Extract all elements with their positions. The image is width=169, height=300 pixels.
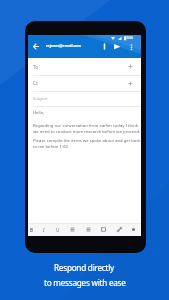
staticText: rejones@email.com [46, 43, 82, 48]
button[interactable] [112, 42, 122, 52]
button[interactable]: To [28, 58, 141, 75]
staticText: U [56, 227, 60, 233]
button[interactable]: rejones@email.com [46, 43, 82, 48]
staticText: to me before 1:00 [33, 144, 68, 150]
staticText: to messages with ease [44, 277, 126, 288]
button[interactable]: Subject [28, 91, 141, 106]
staticText: we need to conduct more research before … [33, 129, 141, 135]
button[interactable] [86, 227, 91, 232]
button[interactable]: B [30, 227, 33, 233]
staticText: Hello, [33, 110, 45, 116]
staticText: Please compile the items we spoke about … [33, 138, 141, 144]
button[interactable]: Cc [28, 75, 141, 91]
button[interactable] [70, 227, 75, 232]
staticText: Respond directly [54, 262, 115, 273]
staticText: Cc [33, 80, 39, 86]
button[interactable] [30, 42, 40, 52]
button[interactable] [127, 42, 136, 52]
button[interactable] [132, 228, 135, 231]
button[interactable]: U [56, 227, 60, 233]
staticText: Subject [33, 96, 48, 102]
button[interactable] [100, 42, 109, 52]
button[interactable] [101, 227, 106, 232]
staticText: To [33, 64, 38, 70]
staticText: B [30, 227, 33, 233]
staticText: I [43, 227, 45, 233]
staticText: Regarding our conversation from earlier … [33, 123, 139, 129]
staticText: 10:56 [125, 36, 134, 40]
button[interactable] [117, 227, 122, 232]
button[interactable]: I [43, 227, 45, 233]
